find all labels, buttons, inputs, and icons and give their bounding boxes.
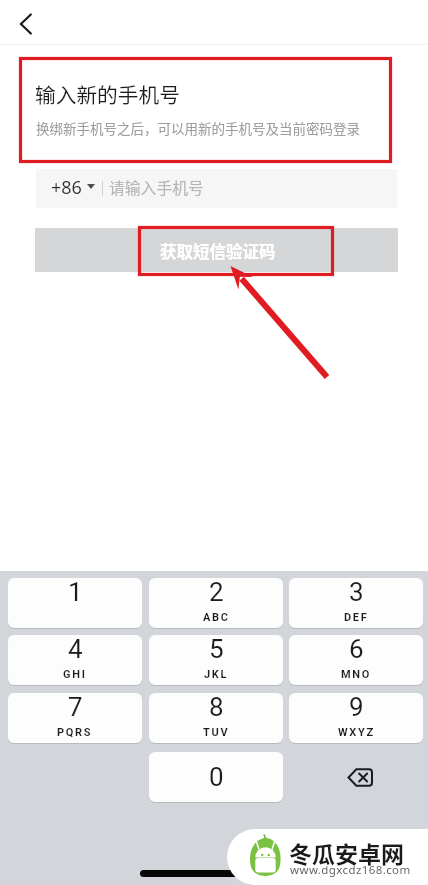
staticText: PQRS [57, 726, 93, 739]
staticText: MNO [341, 668, 372, 681]
button[interactable]: 9 [289, 693, 423, 743]
staticText: 9 [349, 693, 364, 722]
staticText: 输入新的手机号 [35, 79, 180, 109]
staticText: 0 [209, 762, 224, 792]
staticText: 1 [68, 578, 83, 607]
staticText: ABC [203, 611, 230, 624]
staticText: 7 [68, 693, 83, 722]
staticText: 2 [209, 578, 224, 607]
staticText: TUV [203, 726, 230, 739]
button[interactable]: 1 [8, 578, 142, 628]
staticText: 8 [209, 693, 224, 722]
button[interactable]: 获取短信验证码 [35, 228, 398, 272]
staticText: +86 [51, 175, 82, 200]
staticText: 3 [349, 578, 364, 607]
staticText: 冬瓜安卓网 [289, 836, 404, 869]
button[interactable]: Backspace [293, 752, 427, 802]
button[interactable]: 0 [149, 752, 283, 802]
button[interactable]: 3 [289, 578, 423, 628]
staticText: 请输入手机号 [109, 176, 204, 199]
staticText: 4 [68, 635, 83, 664]
staticText: 换绑新手机号之后，可以用新的手机号及当前密码登录 [36, 118, 360, 138]
button[interactable]: Back [6, 4, 46, 44]
staticText: WXYZ [338, 726, 375, 739]
staticText: GHI [63, 668, 87, 681]
staticText: www.dgxcdz168.com [290, 862, 411, 878]
button[interactable]: 4 [8, 635, 142, 685]
staticText: 5 [209, 635, 224, 664]
button[interactable]: +86 [36, 169, 397, 208]
staticText: JKL [204, 668, 229, 681]
button[interactable]: 8 [149, 693, 283, 743]
staticText: 6 [349, 635, 364, 664]
button[interactable]: 7 [8, 693, 142, 743]
staticText: 获取短信验证码 [160, 239, 276, 263]
staticText: DEF [344, 611, 369, 624]
button[interactable]: 2 [149, 578, 283, 628]
button[interactable]: 6 [289, 635, 423, 685]
button[interactable]: 5 [149, 635, 283, 685]
